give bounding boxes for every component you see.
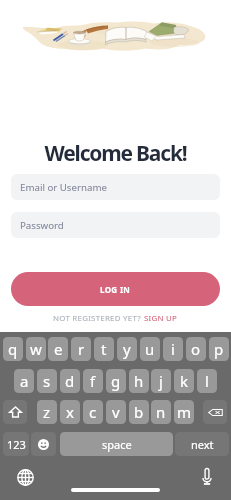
button[interactable]: q — [3, 337, 23, 361]
staticText: h — [134, 371, 144, 391]
staticText: 123 — [7, 437, 26, 452]
staticText: p — [214, 339, 224, 359]
staticText: NOT REGISTERED YET? — [53, 313, 144, 324]
button[interactable]: l — [197, 369, 217, 393]
button[interactable]: LOG IN — [11, 272, 220, 306]
button[interactable]: Emoji — [31, 432, 56, 456]
staticText: c — [89, 402, 97, 422]
button[interactable]: w — [26, 337, 46, 361]
button[interactable]: t — [94, 337, 114, 361]
staticText: b — [134, 402, 144, 422]
button[interactable]: c — [83, 400, 103, 424]
button[interactable]: z — [37, 400, 57, 424]
staticText: space — [102, 437, 132, 452]
button[interactable]: k — [174, 369, 194, 393]
button[interactable]: o — [186, 337, 206, 361]
staticText: s — [43, 371, 51, 391]
staticText: f — [90, 371, 96, 391]
staticText: u — [145, 339, 155, 359]
button[interactable]: a — [14, 369, 34, 393]
staticText: Password — [20, 219, 64, 232]
button[interactable]: y — [117, 337, 137, 361]
button[interactable]: e — [48, 337, 68, 361]
button[interactable]: d — [60, 369, 80, 393]
staticText: w — [30, 339, 42, 359]
button[interactable]: Email or Username — [11, 174, 220, 200]
button[interactable]: f — [83, 369, 103, 393]
staticText: k — [180, 371, 189, 391]
button[interactable]: p — [209, 337, 229, 361]
button[interactable]: h — [129, 369, 149, 393]
staticText: t — [101, 339, 107, 359]
button[interactable]: g — [106, 369, 126, 393]
staticText: m — [177, 402, 192, 422]
staticText: LOG IN — [100, 284, 131, 295]
staticText: Email or Username — [20, 181, 107, 194]
button[interactable]: SIGN UP — [144, 313, 178, 324]
staticText: v — [112, 402, 120, 422]
button[interactable]: j — [151, 369, 171, 393]
staticText: g — [111, 371, 121, 391]
button[interactable]: Password — [11, 212, 220, 238]
staticText: a — [20, 371, 29, 391]
button[interactable]: Voice input — [201, 468, 213, 485]
staticText: j — [159, 371, 163, 391]
button[interactable]: m — [174, 400, 194, 424]
staticText: q — [8, 339, 18, 359]
staticText: r — [78, 339, 85, 359]
staticText: n — [156, 402, 166, 422]
staticText: next — [191, 437, 214, 452]
staticText: z — [43, 402, 51, 422]
button[interactable]: s — [37, 369, 57, 393]
button[interactable]: Change keyboard language — [17, 469, 34, 486]
button[interactable]: next — [175, 432, 229, 456]
button[interactable]: b — [129, 400, 149, 424]
staticText: i — [171, 339, 175, 359]
staticText: x — [66, 402, 74, 422]
staticText: l — [205, 371, 209, 391]
staticText: d — [65, 371, 75, 391]
button[interactable]: r — [71, 337, 91, 361]
button[interactable]: 123 — [3, 432, 29, 456]
button[interactable]: v — [106, 400, 126, 424]
staticText: o — [191, 339, 201, 359]
button[interactable]: n — [151, 400, 171, 424]
button[interactable]: Shift — [3, 400, 27, 424]
button[interactable]: u — [140, 337, 160, 361]
staticText: y — [123, 339, 131, 359]
button[interactable]: x — [60, 400, 80, 424]
staticText: e — [54, 339, 63, 359]
button[interactable]: i — [163, 337, 183, 361]
staticText: Welcome Back! — [0, 139, 231, 168]
button[interactable]: Backspace — [203, 400, 227, 424]
button[interactable]: space — [60, 432, 173, 456]
